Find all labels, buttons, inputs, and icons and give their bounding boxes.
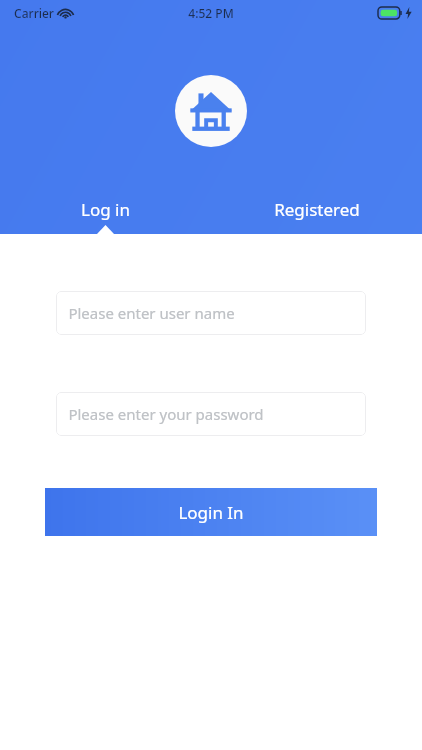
button[interactable]: Please enter user name bbox=[56, 291, 366, 335]
staticText: Registered bbox=[274, 198, 360, 221]
button[interactable]: Registered bbox=[211, 194, 422, 225]
staticText: Carrier bbox=[14, 5, 54, 21]
button[interactable]: Login In bbox=[45, 488, 377, 536]
staticText: Please enter user name bbox=[68, 303, 235, 323]
button[interactable]: Log in bbox=[0, 194, 211, 225]
staticText: Login In bbox=[178, 501, 244, 524]
staticText: Please enter your password bbox=[68, 404, 264, 424]
staticText: 4:52 PM bbox=[188, 5, 234, 21]
staticText: Log in bbox=[81, 198, 130, 221]
button[interactable]: Please enter your password bbox=[56, 392, 366, 436]
